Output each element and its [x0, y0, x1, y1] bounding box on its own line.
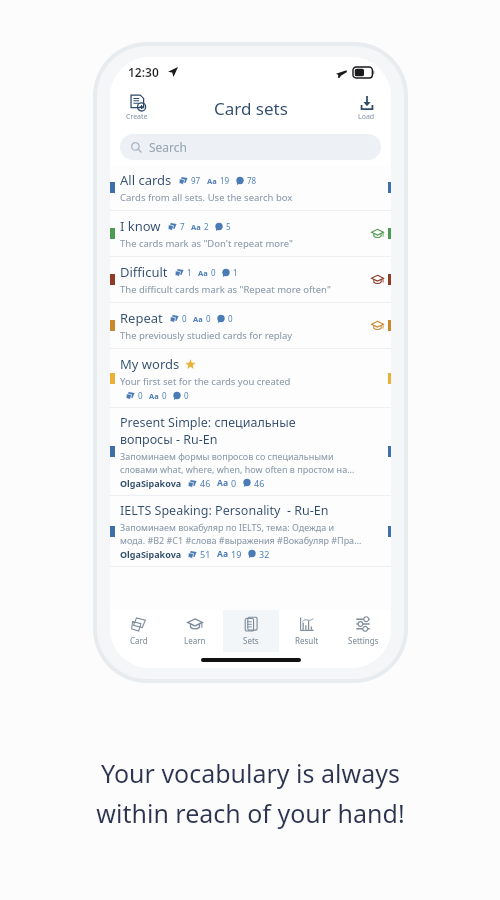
staticText: словами what, where, when, how often в п… — [120, 463, 355, 475]
staticText: 46 — [254, 477, 265, 489]
staticText: 0 — [228, 313, 233, 324]
staticText: 2 — [204, 221, 209, 232]
staticText: 0 — [211, 267, 216, 278]
staticText: 5 — [226, 221, 231, 232]
staticText: My words — [120, 355, 180, 373]
staticText: 12:30 — [128, 64, 159, 80]
staticText: OlgaSipakova — [120, 477, 182, 489]
staticText: Learn — [184, 635, 206, 646]
staticText: All cards — [120, 171, 172, 189]
staticText: I know — [120, 217, 161, 235]
staticText: Repeat — [120, 309, 163, 327]
button[interactable]: All cards — [110, 165, 391, 210]
staticText: 32 — [259, 548, 270, 560]
staticText: 46 — [200, 477, 211, 489]
staticText: 7 — [180, 221, 185, 232]
staticText: Settings — [348, 635, 379, 646]
button[interactable]: My words — [110, 349, 391, 407]
staticText: Aa — [207, 176, 217, 186]
staticText: Aa — [198, 268, 208, 278]
button[interactable]: Difficult — [110, 257, 391, 302]
staticText: Sets — [243, 635, 259, 646]
staticText: Запоминаем вокабуляр по IELTS, тема: Оде… — [120, 521, 335, 533]
staticText: 51 — [200, 548, 211, 560]
staticText: The difficult cards mark as "Repeat more… — [120, 283, 331, 296]
staticText: Aa — [217, 477, 228, 489]
staticText: Aa — [193, 314, 203, 324]
staticText: Aa — [217, 548, 228, 560]
staticText: Aa — [191, 222, 201, 232]
staticText: Difficult — [120, 263, 168, 281]
staticText: 0 — [182, 313, 187, 324]
button[interactable]: Create — [120, 92, 154, 124]
button[interactable]: Search — [120, 134, 381, 160]
staticText: IELTS Speaking: Personality - Ru-En — [120, 502, 329, 519]
staticText: Запоминаем формы вопросов со специальным… — [120, 450, 334, 462]
staticText: 0 — [162, 390, 167, 401]
staticText: The previously studied cards for replay — [120, 329, 293, 342]
staticText: Create — [126, 112, 148, 122]
staticText: 0 — [184, 390, 189, 401]
staticText: 1 — [187, 267, 192, 278]
staticText: 97 — [191, 175, 201, 186]
staticText: 0 — [231, 477, 237, 489]
button[interactable]: Sets — [223, 610, 279, 652]
staticText: Result — [295, 635, 319, 646]
button[interactable]: IELTS Speaking: Personality - Ru-En — [110, 496, 391, 566]
button[interactable]: Present Simple: специальные — [110, 408, 391, 495]
button[interactable]: Result — [279, 610, 335, 652]
staticText: мода. #B2 #C1 #слова #выражения #Вокабул… — [120, 534, 362, 546]
staticText: Cards from all sets. Use the search box — [120, 191, 293, 204]
button[interactable]: Repeat — [110, 303, 391, 348]
button[interactable]: Load — [352, 93, 381, 124]
staticText: The cards mark as "Don't repeat more" — [120, 237, 293, 250]
staticText: 0 — [206, 313, 211, 324]
staticText: 19 — [231, 548, 242, 560]
button[interactable]: Learn — [167, 610, 223, 652]
staticText: within reach of your hand! — [96, 796, 405, 830]
staticText: Search — [149, 139, 187, 155]
button[interactable]: I know — [110, 211, 391, 256]
staticText: 78 — [247, 175, 257, 186]
staticText: OlgaSipakova — [120, 548, 182, 560]
staticText: Aa — [149, 391, 159, 401]
staticText: вопросы - Ru-En — [120, 431, 218, 448]
staticText: Your vocabulary is always — [101, 756, 400, 790]
staticText: 0 — [138, 390, 143, 401]
staticText: Load — [358, 112, 375, 122]
staticText: Card — [130, 635, 148, 646]
staticText: Your first set for the cards you created — [120, 375, 291, 388]
staticText: Card sets — [214, 97, 288, 120]
staticText: Present Simple: специальные — [120, 414, 296, 431]
staticText: 19 — [220, 175, 230, 186]
staticText: 1 — [233, 267, 238, 278]
button[interactable]: Card — [110, 610, 167, 652]
button[interactable]: Settings — [335, 610, 391, 652]
